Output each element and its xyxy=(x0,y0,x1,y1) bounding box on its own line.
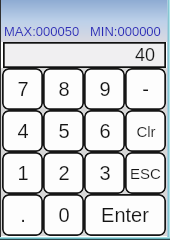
button[interactable]: 5 xyxy=(43,110,84,152)
button[interactable]: 1 xyxy=(2,152,43,194)
staticText: 7 xyxy=(17,78,29,100)
button[interactable]: 4 xyxy=(2,110,43,152)
staticText: 4 xyxy=(17,120,29,142)
staticText: Clr xyxy=(136,123,156,140)
staticText: 40 xyxy=(135,45,156,65)
button[interactable]: 0 xyxy=(43,194,84,236)
button[interactable]: 9 xyxy=(84,68,125,110)
staticText: 0 xyxy=(58,204,70,226)
button[interactable]: 8 xyxy=(43,68,84,110)
staticText: 3 xyxy=(99,162,111,184)
button[interactable]: . xyxy=(2,194,43,236)
staticText: 9 xyxy=(99,78,111,100)
button[interactable]: 3 xyxy=(84,152,125,194)
button[interactable]: Enter xyxy=(84,194,166,236)
staticText: 6 xyxy=(99,120,111,142)
button[interactable]: ESC xyxy=(125,152,166,194)
staticText: . xyxy=(20,204,26,226)
staticText: MAX:000050 xyxy=(4,24,80,39)
button[interactable]: Clr xyxy=(125,110,166,152)
staticText: ESC xyxy=(130,165,161,182)
staticText: 8 xyxy=(58,78,70,100)
button[interactable]: 7 xyxy=(2,68,43,110)
staticText: 5 xyxy=(58,120,70,142)
staticText: Enter xyxy=(101,204,149,226)
staticText: MIN:000000 xyxy=(90,24,161,39)
button[interactable]: 6 xyxy=(84,110,125,152)
staticText: 1 xyxy=(17,162,29,184)
button[interactable]: 2 xyxy=(43,152,84,194)
staticText: - xyxy=(142,78,149,100)
staticText: 2 xyxy=(58,162,70,184)
button[interactable]: - xyxy=(125,68,166,110)
